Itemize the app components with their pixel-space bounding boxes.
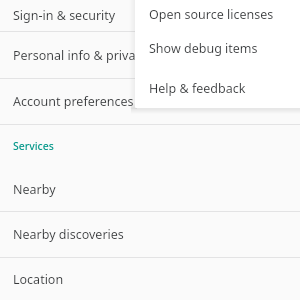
button[interactable]: Open source licenses: [135, 1, 300, 28]
staticText: Help & feedback: [149, 80, 246, 97]
button[interactable]: Nearby discoveries: [0, 212, 300, 257]
staticText: Account preferences: [13, 93, 134, 110]
staticText: Services: [13, 139, 54, 153]
button[interactable]: Help & feedback: [135, 68, 300, 108]
staticText: Open source licenses: [149, 6, 274, 23]
button[interactable]: Nearby: [0, 167, 300, 211]
button[interactable]: Location: [0, 258, 300, 300]
staticText: Show debug items: [149, 40, 258, 57]
staticText: Sign-in & security: [13, 7, 116, 24]
button[interactable]: Personal info & privacy: [0, 32, 300, 78]
staticText: Location: [13, 271, 64, 288]
staticText: Nearby: [13, 181, 56, 198]
button[interactable]: Show debug items: [135, 28, 300, 68]
staticText: Nearby discoveries: [13, 226, 124, 243]
button[interactable]: Account preferences: [0, 79, 300, 124]
button[interactable]: Sign-in & security: [0, 0, 300, 31]
staticText: Personal info & privacy: [13, 47, 148, 64]
